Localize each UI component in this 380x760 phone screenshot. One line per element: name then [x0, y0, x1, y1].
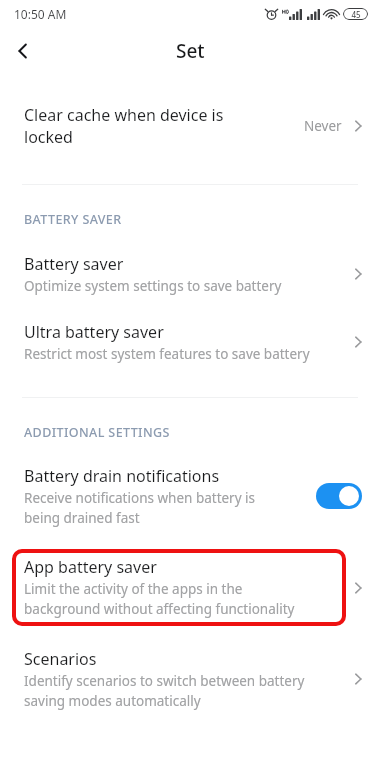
button[interactable]: Ultra battery saver — [0, 321, 380, 363]
staticText: BATTERY SAVER — [24, 211, 122, 228]
staticText: Clear cache when device is locked — [24, 104, 224, 148]
button[interactable]: Battery saver — [0, 253, 380, 295]
button[interactable]: Battery drain notifications — [0, 465, 380, 527]
staticText: Limit the activity of the apps in the ba… — [24, 580, 295, 618]
staticText: Ultra battery saver — [24, 321, 164, 343]
staticText: Receive notifications when battery is be… — [24, 489, 256, 527]
staticText: Set — [176, 38, 205, 64]
staticText: ADDITIONAL SETTINGS — [24, 424, 170, 441]
staticText: Battery saver — [24, 253, 124, 275]
button[interactable]: Battery drain notifications toggle — [316, 483, 362, 509]
staticText: Scenarios — [24, 648, 97, 670]
button[interactable]: Back — [0, 28, 46, 74]
staticText: App battery saver — [24, 556, 157, 578]
staticText: Never — [304, 117, 342, 135]
staticText: Battery drain notifications — [24, 465, 220, 487]
staticText: Identify scenarios to switch between bat… — [24, 672, 305, 710]
button[interactable]: App battery saver — [0, 549, 380, 626]
staticText: Restrict most system features to save ba… — [24, 345, 310, 363]
staticText: 45 — [351, 9, 361, 20]
staticText: 10:50 AM — [14, 6, 67, 22]
button[interactable]: Clear cache when device is locked — [0, 104, 380, 148]
button[interactable]: Scenarios — [0, 648, 380, 710]
staticText: Optimize system settings to save battery — [24, 277, 282, 295]
